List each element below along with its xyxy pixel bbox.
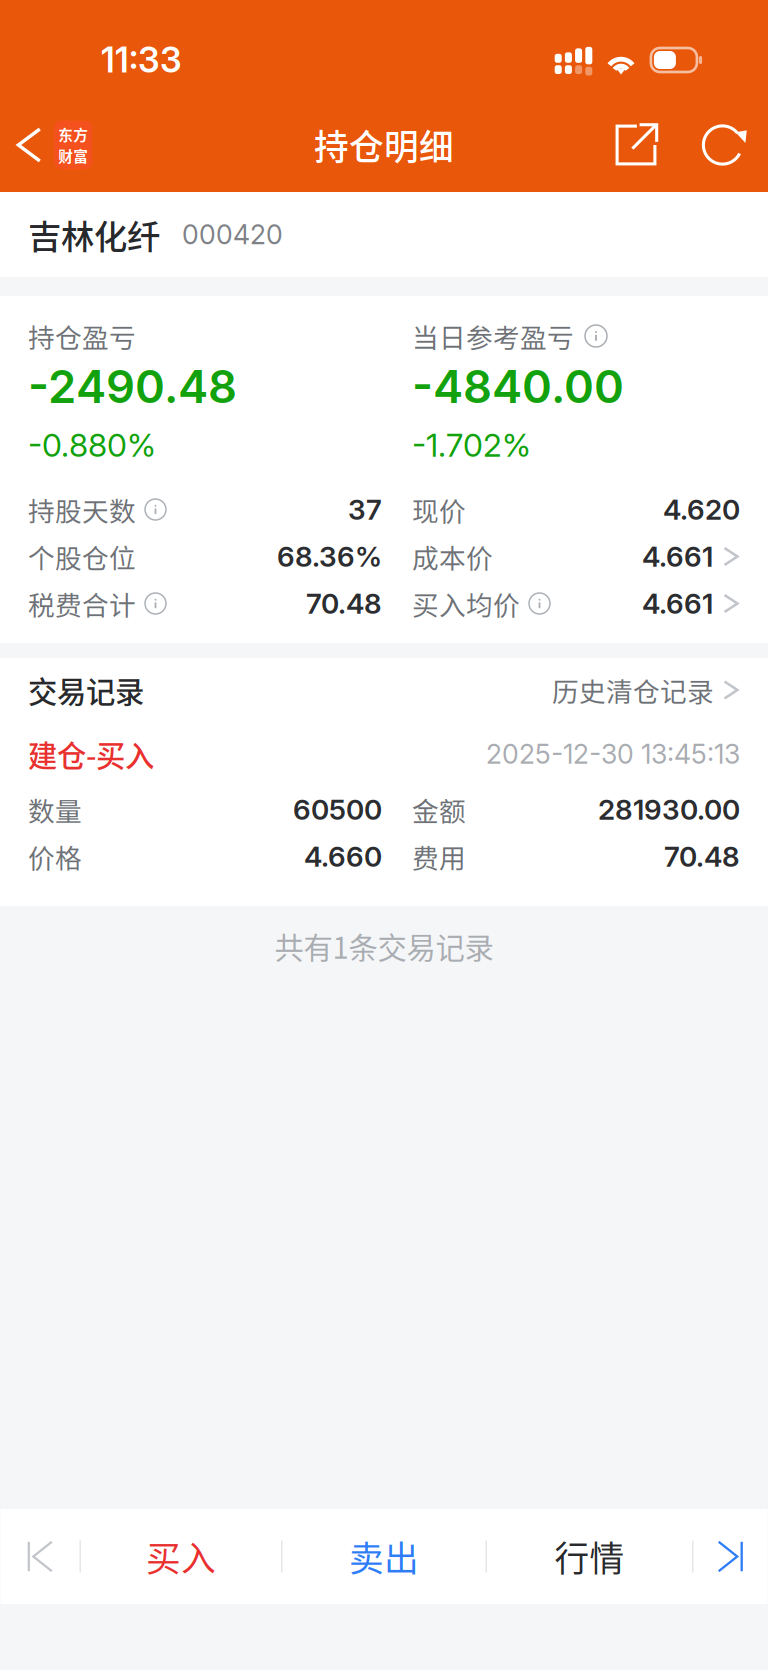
staticText: 4.661: [642, 587, 713, 620]
button[interactable]: Last page: [693, 1509, 767, 1604]
staticText: 税费合计: [28, 584, 136, 623]
staticText: 金额: [412, 790, 466, 829]
staticText: 东方: [58, 124, 88, 145]
staticText: 持仓明细: [314, 120, 454, 170]
staticText: 持仓盈亏: [28, 317, 136, 355]
staticText: 卖出: [349, 1531, 419, 1582]
staticText: 财富: [58, 145, 88, 166]
staticText: 60500: [293, 793, 382, 826]
staticText: 4.660: [304, 840, 382, 873]
staticText: 70.48: [664, 840, 740, 873]
staticText: 37: [348, 493, 382, 526]
staticText: -4840.00: [412, 359, 624, 414]
button[interactable]: Share: [591, 98, 681, 192]
staticText: 个股仓位: [28, 537, 136, 576]
staticText: 吉林化纤: [28, 210, 160, 259]
staticText: 现价: [412, 490, 466, 529]
button[interactable]: 行情: [487, 1509, 692, 1604]
button[interactable]: 卖出: [282, 1509, 485, 1604]
staticText: 建仓-买入: [28, 733, 154, 775]
staticText: 成本价: [412, 537, 493, 576]
staticText: -2490.48: [28, 359, 237, 414]
staticText: 4.661: [642, 540, 713, 573]
staticText: -0.880%: [28, 426, 156, 464]
staticText: 2025-12-30 13:45:13: [486, 738, 740, 770]
staticText: 持股天数: [28, 490, 136, 529]
staticText: 买入均价: [412, 584, 520, 623]
button[interactable]: 历史清仓记录: [552, 658, 740, 722]
button[interactable]: 买入: [81, 1509, 281, 1604]
staticText: 历史清仓记录: [552, 671, 714, 709]
staticText: 000420: [182, 218, 283, 251]
button[interactable]: Back: [0, 98, 104, 192]
staticText: 买入: [146, 1531, 216, 1582]
staticText: 68.36%: [277, 540, 382, 573]
staticText: 行情: [554, 1531, 624, 1582]
staticText: 11:33: [101, 39, 182, 81]
staticText: 费用: [412, 837, 466, 876]
staticText: 281930.00: [598, 793, 740, 826]
staticText: 当日参考盈亏: [412, 317, 574, 355]
button[interactable]: First page: [0, 1509, 79, 1604]
staticText: 70.48: [306, 587, 382, 620]
staticText: 共有1条交易记录: [274, 925, 493, 967]
staticText: 价格: [28, 837, 82, 876]
staticText: 交易记录: [28, 669, 144, 711]
staticText: 4.620: [663, 493, 740, 526]
staticText: 数量: [28, 790, 82, 829]
button[interactable]: Refresh: [681, 98, 768, 192]
staticText: -1.702%: [412, 426, 531, 464]
